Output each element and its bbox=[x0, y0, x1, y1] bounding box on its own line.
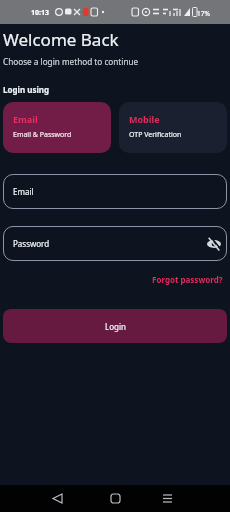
button[interactable]: Mobile bbox=[119, 102, 227, 153]
staticText: Email bbox=[13, 186, 34, 197]
staticText: Login using bbox=[3, 84, 50, 95]
staticText: Welcome Back bbox=[3, 28, 119, 51]
staticText: Email bbox=[13, 113, 38, 125]
staticText: Mobile bbox=[129, 113, 160, 125]
button[interactable] bbox=[47, 488, 67, 508]
staticText: 10:13 bbox=[31, 8, 49, 18]
button[interactable]: Email bbox=[3, 102, 111, 153]
staticText: Login bbox=[105, 321, 126, 332]
staticText: Choose a login method to continue bbox=[3, 56, 139, 67]
button[interactable] bbox=[105, 488, 125, 508]
button[interactable]: Password bbox=[3, 226, 227, 261]
staticText: 17% bbox=[197, 9, 210, 18]
button[interactable] bbox=[157, 488, 177, 508]
staticText: Email & Password bbox=[13, 130, 72, 140]
button[interactable]: Login bbox=[3, 309, 227, 343]
button[interactable]: Email bbox=[3, 174, 227, 209]
button[interactable]: Forgot password? bbox=[152, 274, 227, 285]
staticText: Password bbox=[13, 238, 50, 249]
staticText: OTP Verification bbox=[129, 130, 182, 140]
